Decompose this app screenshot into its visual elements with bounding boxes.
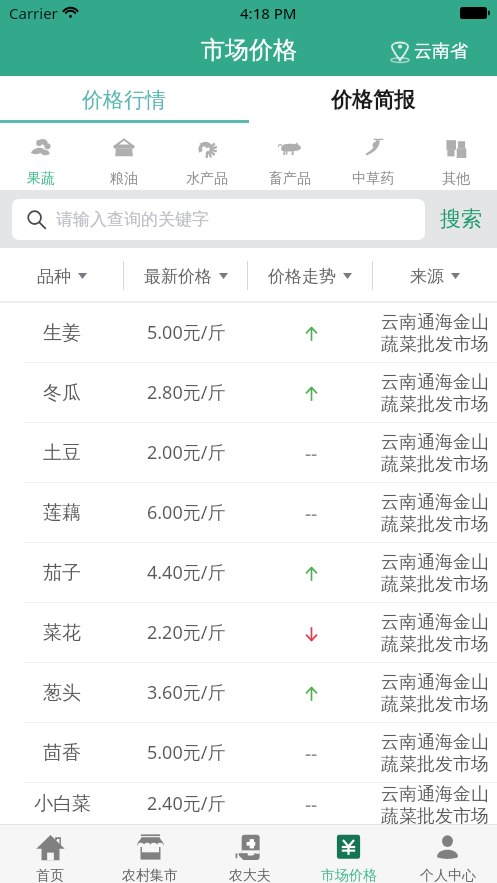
button[interactable]: 来源 <box>373 248 497 301</box>
staticText: 水产品 <box>186 170 228 188</box>
staticText: 土豆 <box>43 441 81 465</box>
staticText: 2.80元/斤 <box>147 380 226 405</box>
button[interactable]: 莲藕 <box>0 483 497 542</box>
staticText: 5.00元/斤 <box>147 320 226 345</box>
staticText: 云南通海金山蔬菜批发市场 <box>381 611 493 655</box>
button[interactable]: 其他 <box>414 123 497 190</box>
staticText: 生姜 <box>43 321 81 345</box>
staticText: 果蔬 <box>27 170 55 188</box>
staticText: -- <box>305 792 318 818</box>
button[interactable]: 最新价格 <box>124 248 247 301</box>
staticText: 2.00元/斤 <box>147 440 226 465</box>
staticText: 葱头 <box>43 681 81 705</box>
staticText: 云南通海金山蔬菜批发市场 <box>381 551 493 595</box>
button[interactable]: 请输入查询的关键字 <box>12 199 425 240</box>
staticText: 价格走势 <box>268 266 336 287</box>
staticText: 云南通海金山蔬菜批发市场 <box>381 783 493 824</box>
staticText: -- <box>305 741 318 767</box>
staticText: 小白菜 <box>34 792 91 816</box>
staticText: 其他 <box>442 170 470 188</box>
button[interactable]: 农大夫 <box>200 825 299 883</box>
staticText: Carrier <box>9 3 58 23</box>
staticText: 市场价格 <box>321 867 377 883</box>
button[interactable]: 首页 <box>0 825 100 883</box>
button[interactable]: 市场价格 <box>299 825 398 883</box>
button[interactable]: 果蔬 <box>0 123 82 190</box>
staticText: 4.40元/斤 <box>147 560 226 585</box>
staticText: 最新价格 <box>144 266 212 287</box>
staticText: 5.00元/斤 <box>147 740 226 765</box>
button[interactable]: 价格走势 <box>248 248 372 301</box>
button[interactable]: 中草药 <box>331 123 414 190</box>
staticText: 粮油 <box>110 170 138 188</box>
staticText: 价格行情 <box>82 87 166 113</box>
staticText: 2.40元/斤 <box>147 791 226 816</box>
staticText: 云南通海金山蔬菜批发市场 <box>381 671 493 715</box>
staticText: 茴香 <box>43 741 81 765</box>
button[interactable]: 葱头 <box>0 663 497 722</box>
staticText: 农村集市 <box>122 867 178 883</box>
button[interactable]: 价格行情 <box>0 76 248 123</box>
button[interactable]: 茄子 <box>0 543 497 602</box>
staticText: 3.60元/斤 <box>147 680 226 705</box>
button[interactable]: 菜花 <box>0 603 497 662</box>
button[interactable]: 搜索 <box>425 190 497 248</box>
staticText: 2.20元/斤 <box>147 620 226 645</box>
button[interactable]: 小白菜 <box>0 783 497 824</box>
button[interactable]: 云南省 <box>387 34 470 68</box>
staticText: 莲藕 <box>43 501 81 525</box>
staticText: 来源 <box>410 266 444 287</box>
staticText: 品种 <box>37 266 71 287</box>
button[interactable]: 个人中心 <box>398 825 497 883</box>
staticText: 云南省 <box>414 40 468 63</box>
button[interactable]: 土豆 <box>0 423 497 482</box>
button[interactable]: 品种 <box>0 248 123 301</box>
button[interactable]: 水产品 <box>165 123 248 190</box>
staticText: 个人中心 <box>420 867 476 883</box>
staticText: 价格简报 <box>331 87 415 113</box>
staticText: 云南通海金山蔬菜批发市场 <box>381 431 493 475</box>
staticText: 云南通海金山蔬菜批发市场 <box>381 371 493 415</box>
staticText: 搜索 <box>440 206 482 232</box>
staticText: 市场价格 <box>201 35 297 65</box>
staticText: 6.00元/斤 <box>147 500 226 525</box>
staticText: 云南通海金山蔬菜批发市场 <box>381 491 493 535</box>
staticText: 首页 <box>36 867 64 883</box>
staticText: 茄子 <box>43 561 81 585</box>
staticText: 4:18 PM <box>240 3 297 23</box>
staticText: 菜花 <box>43 621 81 645</box>
staticText: 畜产品 <box>269 170 311 188</box>
button[interactable]: 生姜 <box>0 303 497 362</box>
staticText: 请输入查询的关键字 <box>56 209 209 230</box>
button[interactable]: 价格简报 <box>248 76 497 123</box>
staticText: 农大夫 <box>229 867 271 883</box>
staticText: 冬瓜 <box>43 381 81 405</box>
button[interactable]: 冬瓜 <box>0 363 497 422</box>
staticText: 云南通海金山蔬菜批发市场 <box>381 731 493 775</box>
staticText: -- <box>305 501 318 527</box>
staticText: 中草药 <box>352 170 394 188</box>
button[interactable]: 畜产品 <box>248 123 331 190</box>
button[interactable]: 农村集市 <box>100 825 200 883</box>
staticText: 云南通海金山蔬菜批发市场 <box>381 311 493 355</box>
staticText: -- <box>305 441 318 467</box>
button[interactable]: 粮油 <box>82 123 165 190</box>
button[interactable]: 茴香 <box>0 723 497 782</box>
